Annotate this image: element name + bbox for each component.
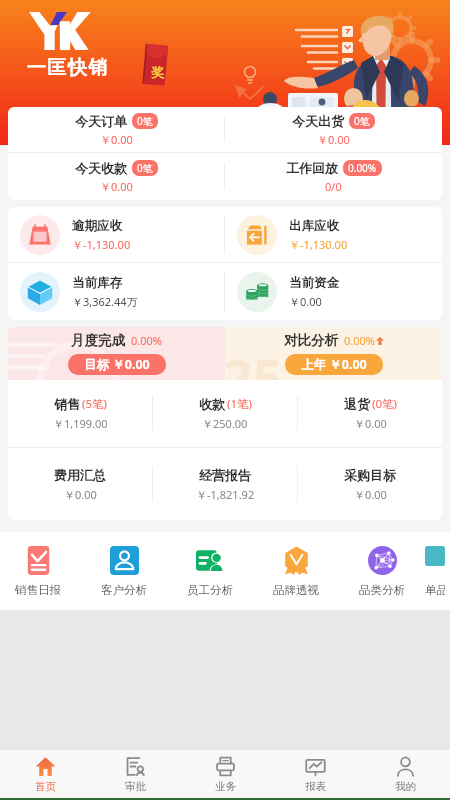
staticText: ￥0.00 bbox=[100, 179, 133, 194]
staticText: 当前资金 bbox=[289, 275, 339, 291]
staticText: 0笔 bbox=[137, 161, 153, 175]
button[interactable]: 客户分析 bbox=[81, 546, 167, 597]
button[interactable]: 逾期应收 bbox=[20, 207, 224, 262]
staticText: 0.00% bbox=[344, 333, 375, 348]
button[interactable]: 工作回放 bbox=[225, 153, 442, 200]
staticText: 逾期应收 bbox=[72, 218, 122, 234]
staticText: ￥0.00 bbox=[100, 132, 133, 147]
staticText: ￥3,362.44万 bbox=[72, 294, 138, 309]
staticText: 收款 bbox=[199, 396, 225, 412]
staticText: ￥-1,130.00 bbox=[289, 237, 348, 252]
staticText: 采购目标 bbox=[344, 467, 396, 483]
staticText: 客户分析 bbox=[101, 583, 147, 597]
button[interactable]: 员工分析 bbox=[167, 546, 253, 597]
button[interactable]: 采购目标 bbox=[298, 448, 442, 520]
button[interactable]: 销售 bbox=[8, 380, 152, 447]
staticText: 品牌透视 bbox=[273, 583, 319, 597]
button[interactable]: 收款 bbox=[153, 380, 297, 447]
staticText: ￥0.00 bbox=[354, 416, 387, 431]
button[interactable]: 今天出货 bbox=[225, 107, 442, 152]
staticText: ￥0.00 bbox=[289, 294, 322, 309]
button[interactable]: 月度完成 bbox=[8, 327, 225, 380]
button[interactable]: 审批 bbox=[90, 750, 180, 798]
staticText: 业务 bbox=[215, 780, 236, 793]
staticText: 费用汇总 bbox=[54, 467, 106, 483]
button[interactable]: 首页 bbox=[0, 750, 90, 798]
button[interactable]: 退货 bbox=[298, 380, 442, 447]
staticText: 报表 bbox=[305, 780, 326, 793]
staticText: ￥-1,130.00 bbox=[72, 237, 131, 252]
button[interactable]: 品类分析 bbox=[339, 546, 425, 597]
staticText: 今天出货 bbox=[292, 113, 344, 129]
staticText: 今天收款 bbox=[75, 160, 127, 176]
staticText: 审批 bbox=[125, 780, 146, 793]
staticText: ￥-1,821.92 bbox=[196, 487, 255, 502]
staticText: 月度完成 bbox=[71, 332, 125, 349]
staticText: (5笔) bbox=[82, 396, 107, 412]
staticText: 销售日报 bbox=[15, 583, 61, 597]
button[interactable]: 业务 bbox=[180, 750, 270, 798]
staticText: 销售 bbox=[54, 396, 80, 412]
button[interactable]: 我的 bbox=[360, 750, 450, 798]
staticText: 经营报告 bbox=[199, 467, 251, 483]
staticText: 工作回放 bbox=[286, 160, 338, 176]
staticText: 今天订单 bbox=[75, 113, 127, 129]
button[interactable]: 当前资金 bbox=[237, 263, 442, 320]
staticText: ￥250.00 bbox=[202, 416, 248, 431]
staticText: 奖 bbox=[151, 64, 164, 80]
staticText: ￥0.00 bbox=[317, 132, 350, 147]
staticText: 上年 ￥0.00 bbox=[301, 356, 367, 373]
button[interactable]: 报表 bbox=[270, 750, 360, 798]
button[interactable]: 今天收款 bbox=[8, 153, 224, 200]
button[interactable]: 对比分析 bbox=[225, 327, 442, 380]
staticText: 员工分析 bbox=[187, 583, 233, 597]
button[interactable]: 出库应收 bbox=[237, 207, 442, 262]
staticText: 目标 ￥0.00 bbox=[84, 356, 150, 373]
staticText: ￥0.00 bbox=[354, 487, 387, 502]
staticText: 出库应收 bbox=[289, 218, 339, 234]
staticText: 我的 bbox=[395, 780, 416, 793]
staticText: 0笔 bbox=[137, 114, 153, 128]
button[interactable]: 品牌透视 bbox=[253, 546, 339, 597]
staticText: 单品分析 bbox=[425, 583, 445, 597]
staticText: 0.00% bbox=[131, 333, 162, 348]
button[interactable]: 费用汇总 bbox=[8, 448, 152, 520]
staticText: 0笔 bbox=[354, 114, 370, 128]
staticText: 25 bbox=[225, 341, 283, 380]
staticText: 0.00% bbox=[348, 161, 377, 175]
button[interactable]: 当前库存 bbox=[20, 263, 224, 320]
button[interactable]: 销售日报 bbox=[0, 546, 81, 597]
staticText: 首页 bbox=[35, 780, 56, 793]
button[interactable]: 经营报告 bbox=[153, 448, 297, 520]
staticText: ￥1,199.00 bbox=[53, 416, 108, 431]
button[interactable]: 单品分析 bbox=[425, 546, 445, 597]
staticText: 0/0 bbox=[325, 179, 342, 194]
staticText: 品类分析 bbox=[359, 583, 405, 597]
staticText: (0笔) bbox=[372, 396, 397, 412]
staticText: 对比分析 bbox=[284, 332, 338, 349]
staticText: ￥0.00 bbox=[64, 487, 97, 502]
staticText: 退货 bbox=[344, 396, 370, 412]
staticText: 当前库存 bbox=[72, 275, 122, 291]
button[interactable]: 今天订单 bbox=[8, 107, 224, 152]
staticText: 一匡快销 bbox=[26, 56, 108, 80]
staticText: (1笔) bbox=[227, 396, 252, 412]
